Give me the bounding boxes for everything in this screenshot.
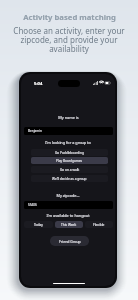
button[interactable]: Play Boardgames — [31, 157, 108, 164]
staticText: Activity based matching — [23, 12, 116, 22]
staticText: Flexible — [93, 223, 105, 227]
button[interactable]: Benjamin — [24, 127, 113, 135]
staticText: I'm looking for a group to — [45, 140, 91, 145]
staticText: Benjamin — [28, 129, 42, 133]
button[interactable]: Friend Group — [50, 236, 89, 246]
button[interactable]: This Week — [55, 221, 83, 228]
staticText: Friend Group — [59, 239, 81, 244]
staticText: 5:04 — [34, 81, 43, 87]
staticText: Today — [34, 223, 43, 227]
staticText: We'll decide as a group — [52, 177, 87, 181]
staticText: Choose an activity, enter your zipcode, … — [13, 25, 125, 55]
button[interactable]: Today — [24, 221, 53, 228]
staticText: Go Paddleboarding — [55, 151, 84, 155]
button[interactable]: We'll decide as a group — [31, 175, 108, 182]
staticText: My name is — [58, 115, 79, 120]
staticText: 55406 — [28, 203, 37, 207]
staticText: Go on a walk — [60, 168, 80, 172]
button[interactable]: Flexible — [85, 221, 113, 228]
staticText: Play Boardgames — [56, 159, 83, 163]
staticText: I'm available to hangout — [46, 213, 90, 218]
button[interactable]: 55406 — [24, 201, 113, 209]
staticText: My zipcode... — [56, 193, 80, 198]
button[interactable]: Go on a walk — [31, 166, 108, 173]
button[interactable]: Go Paddleboarding — [31, 149, 108, 156]
staticText: This Week — [61, 223, 77, 227]
